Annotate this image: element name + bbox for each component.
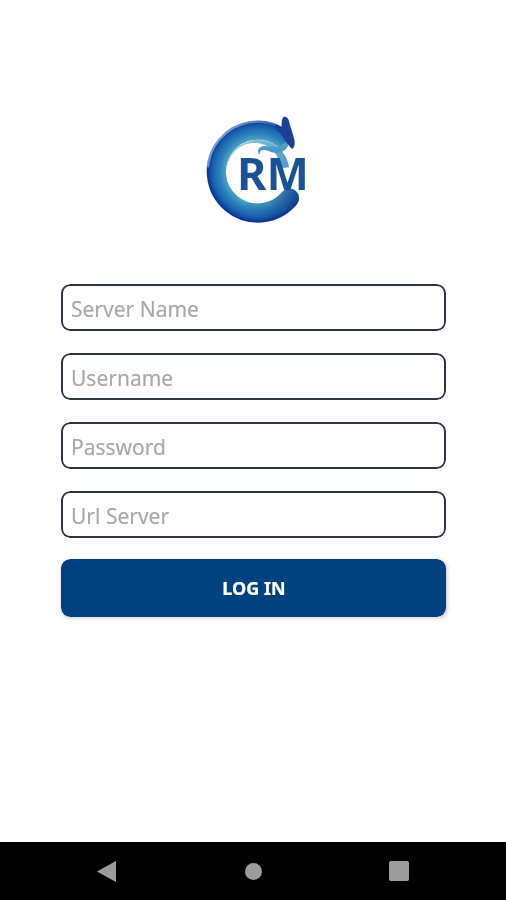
button[interactable]: Username xyxy=(61,353,446,400)
staticText: Password xyxy=(71,433,166,462)
button[interactable]: LOG IN xyxy=(61,559,446,617)
button[interactable]: Back xyxy=(76,842,136,900)
button[interactable]: Server Name xyxy=(61,284,446,331)
staticText: Server Name xyxy=(71,295,199,324)
staticText: LOG IN xyxy=(222,576,286,601)
button[interactable]: Home xyxy=(223,842,283,900)
button[interactable]: Password xyxy=(61,422,446,469)
staticText: Url Server xyxy=(71,502,170,531)
button[interactable]: Recent apps xyxy=(369,842,429,900)
staticText: Username xyxy=(71,364,174,393)
button[interactable]: Url Server xyxy=(61,491,446,538)
staticText: RM xyxy=(237,142,309,203)
